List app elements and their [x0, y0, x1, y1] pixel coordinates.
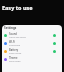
- staticText: Sound: [9, 32, 17, 36]
- button[interactable]: Battery: [2, 47, 62, 55]
- staticText: Settings: [4, 26, 17, 30]
- staticText: Wi-Fi: [9, 40, 16, 44]
- button[interactable]: Theme: [2, 55, 62, 63]
- staticText: Saver active: [9, 52, 22, 55]
- button[interactable]: Wi-Fi: [2, 39, 62, 47]
- staticText: Battery: [9, 48, 19, 52]
- staticText: Alerts and tones: [9, 36, 26, 39]
- staticText: Theme: [9, 56, 18, 60]
- staticText: Easy to use: [2, 4, 33, 11]
- staticText: Connected: [9, 44, 21, 47]
- staticText: Dark mode: [9, 60, 21, 63]
- button[interactable]: Sound: [2, 31, 62, 39]
